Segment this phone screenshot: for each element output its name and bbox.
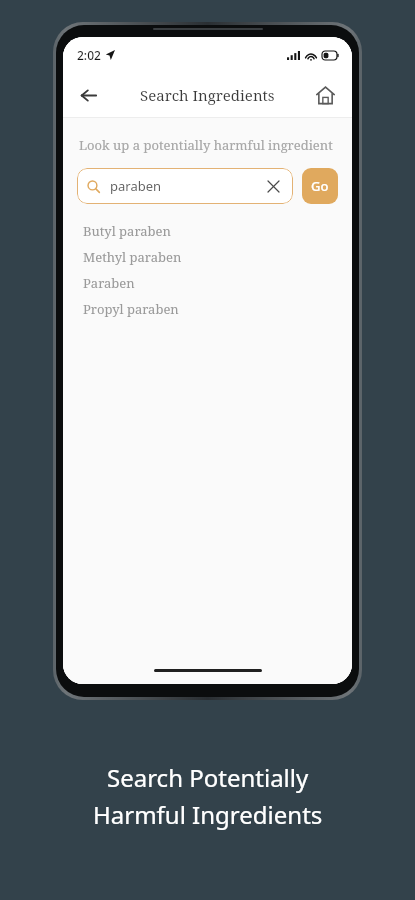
staticText: Go: [311, 177, 329, 195]
button[interactable]: Paraben: [63, 270, 352, 296]
button[interactable]: Clear: [263, 176, 283, 196]
staticText: Paraben: [83, 274, 135, 292]
staticText: Harmful Ingredients: [93, 798, 323, 831]
staticText: Methyl paraben: [83, 248, 182, 266]
staticText: 2:02: [77, 47, 101, 63]
staticText: Propyl paraben: [83, 300, 179, 318]
button[interactable]: Back: [69, 76, 107, 114]
staticText: Butyl paraben: [83, 222, 171, 240]
button[interactable]: Go: [302, 168, 338, 204]
staticText: Look up a potentially harmful ingredient: [79, 136, 333, 154]
button[interactable]: paraben: [77, 168, 293, 204]
staticText: paraben: [110, 177, 162, 195]
button[interactable]: Methyl paraben: [63, 244, 352, 270]
button[interactable]: Butyl paraben: [63, 218, 352, 244]
staticText: Search Potentially: [107, 761, 309, 794]
button[interactable]: Home: [306, 76, 344, 114]
staticText: Search Ingredients: [140, 85, 275, 105]
button[interactable]: Propyl paraben: [63, 296, 352, 322]
